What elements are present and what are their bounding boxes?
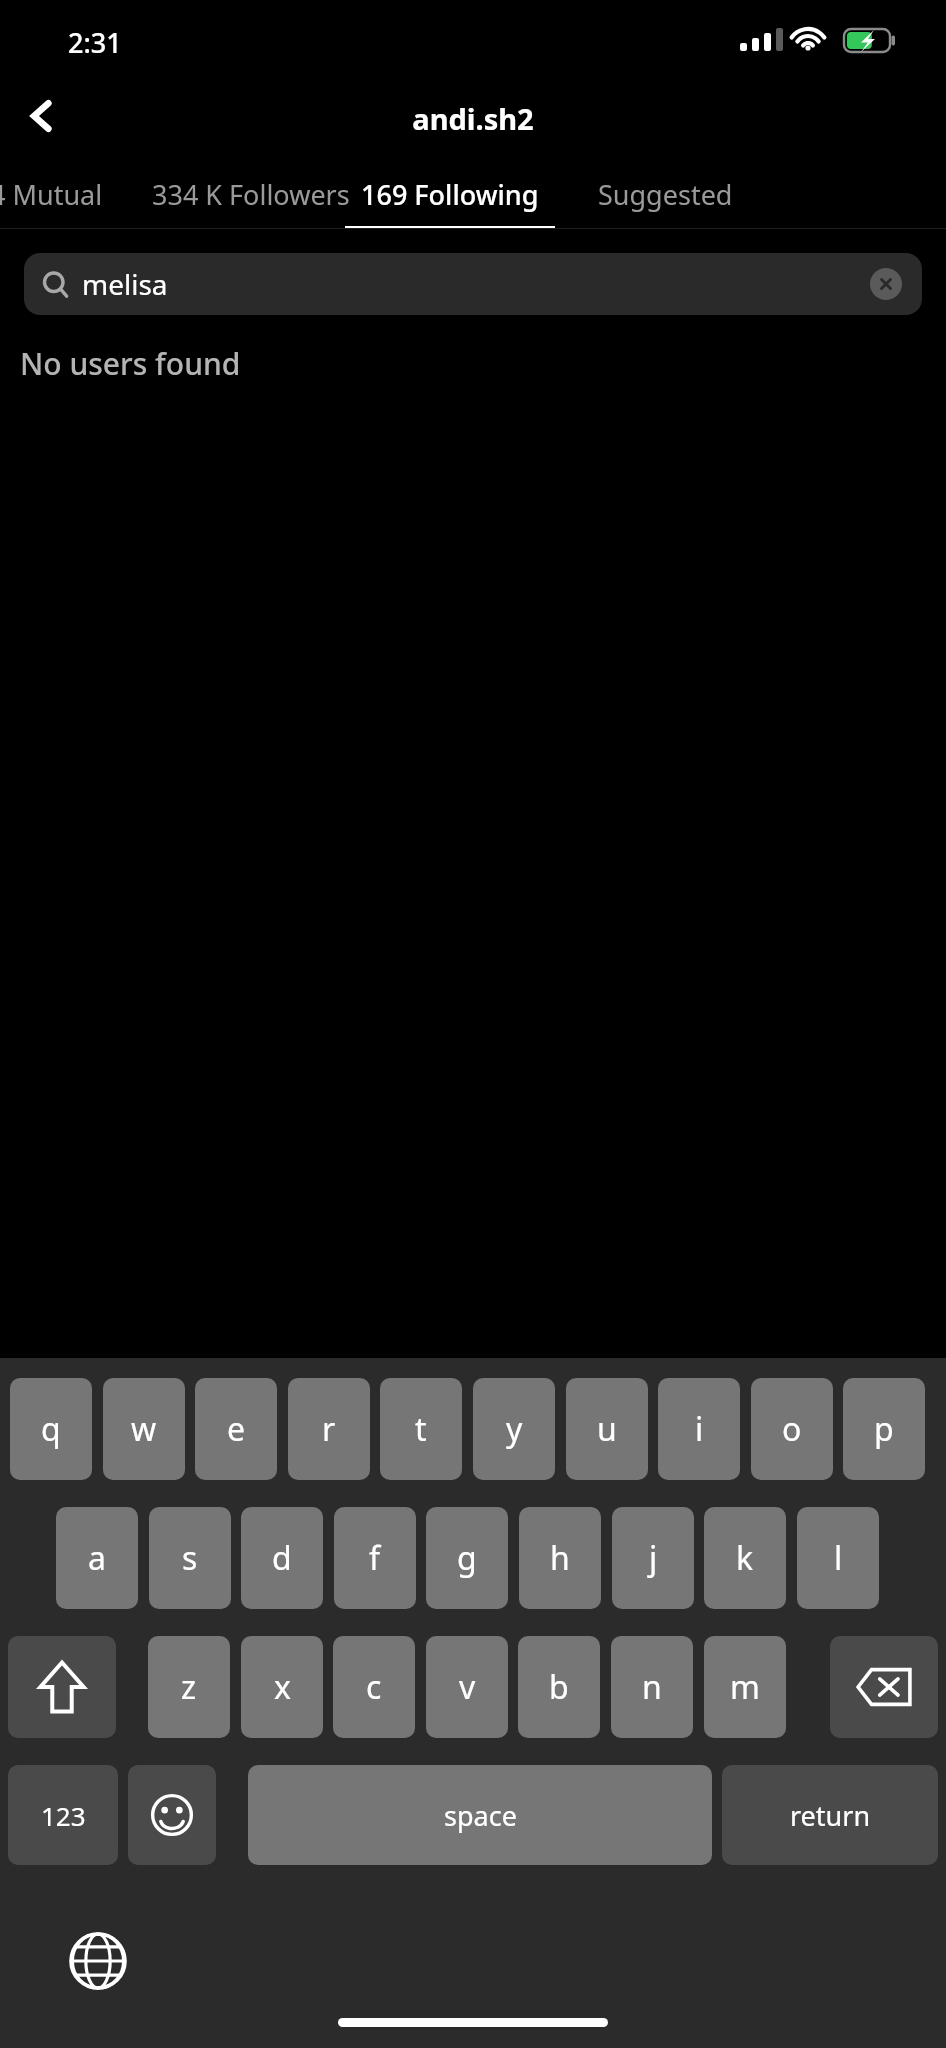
button[interactable]: i [658, 1378, 740, 1480]
button[interactable]: r [288, 1378, 370, 1480]
staticText: p [874, 1407, 894, 1451]
button[interactable]: l [797, 1507, 879, 1609]
staticText: l [834, 1536, 843, 1580]
button[interactable]: k [704, 1507, 786, 1609]
button[interactable]: Suggested [565, 156, 765, 232]
button[interactable]: 169 Following [345, 156, 555, 232]
staticText: c [366, 1665, 382, 1709]
staticText: andi.sh2 [0, 99, 946, 138]
staticText: i [695, 1407, 704, 1451]
staticText: h [550, 1536, 570, 1580]
staticText: 334 K Followers [152, 176, 350, 213]
button[interactable]: s [149, 1507, 231, 1609]
staticText: j [649, 1536, 658, 1580]
staticText: a [88, 1536, 106, 1580]
staticText: 123 [41, 1798, 86, 1833]
staticText: 4 Mutual [0, 176, 103, 213]
button[interactable]: v [426, 1636, 508, 1738]
staticText: melisa [82, 265, 168, 303]
button[interactable]: n [611, 1636, 693, 1738]
button[interactable]: j [612, 1507, 694, 1609]
button[interactable]: b [518, 1636, 600, 1738]
button[interactable]: return [722, 1765, 938, 1865]
staticText: n [642, 1665, 662, 1709]
staticText: x [274, 1665, 291, 1709]
button[interactable]: t [380, 1378, 462, 1480]
button[interactable]: h [519, 1507, 601, 1609]
button[interactable]: q [10, 1378, 92, 1480]
staticText: e [227, 1407, 246, 1451]
staticText: No users found [20, 343, 241, 384]
staticText: r [322, 1407, 336, 1451]
button[interactable]: m [704, 1636, 786, 1738]
button[interactable]: 123 [8, 1765, 118, 1865]
staticText: y [506, 1407, 523, 1451]
staticText: g [457, 1536, 477, 1580]
staticText: k [736, 1536, 754, 1580]
button[interactable]: Emoji [128, 1765, 216, 1865]
button[interactable]: g [426, 1507, 508, 1609]
staticText: 169 Following [361, 176, 539, 213]
button[interactable]: Back [8, 82, 76, 150]
staticText: v [459, 1665, 476, 1709]
button[interactable]: x [241, 1636, 323, 1738]
button[interactable]: u [566, 1378, 648, 1480]
staticText: 2:31 [68, 24, 122, 61]
button[interactable]: d [241, 1507, 323, 1609]
button[interactable]: 4 Mutual [0, 156, 116, 232]
button[interactable]: o [751, 1378, 833, 1480]
button[interactable]: p [843, 1378, 925, 1480]
button[interactable]: z [148, 1636, 230, 1738]
staticText: Suggested [598, 176, 733, 213]
staticText: b [549, 1665, 569, 1709]
staticText: q [41, 1407, 61, 1451]
staticText: t [415, 1407, 427, 1451]
button[interactable]: Shift [8, 1636, 116, 1738]
staticText: f [369, 1536, 381, 1580]
staticText: m [730, 1665, 760, 1709]
button[interactable]: y [473, 1378, 555, 1480]
button[interactable]: Backspace [830, 1636, 938, 1738]
button[interactable]: w [103, 1378, 185, 1480]
staticText: w [131, 1407, 157, 1451]
button[interactable]: c [333, 1636, 415, 1738]
button[interactable]: melisa [24, 253, 922, 315]
staticText: s [182, 1536, 198, 1580]
button[interactable]: a [56, 1507, 138, 1609]
button[interactable]: 334 K Followers [126, 156, 376, 232]
staticText: space [444, 1797, 517, 1834]
button[interactable]: space [248, 1765, 712, 1865]
staticText: return [790, 1797, 871, 1834]
staticText: u [597, 1407, 617, 1451]
staticText: d [272, 1536, 292, 1580]
button[interactable]: Change keyboard language [60, 1923, 136, 1999]
staticText: z [181, 1665, 197, 1709]
button[interactable]: e [195, 1378, 277, 1480]
button[interactable]: f [334, 1507, 416, 1609]
staticText: o [782, 1407, 802, 1451]
button[interactable]: Clear search [870, 268, 902, 300]
